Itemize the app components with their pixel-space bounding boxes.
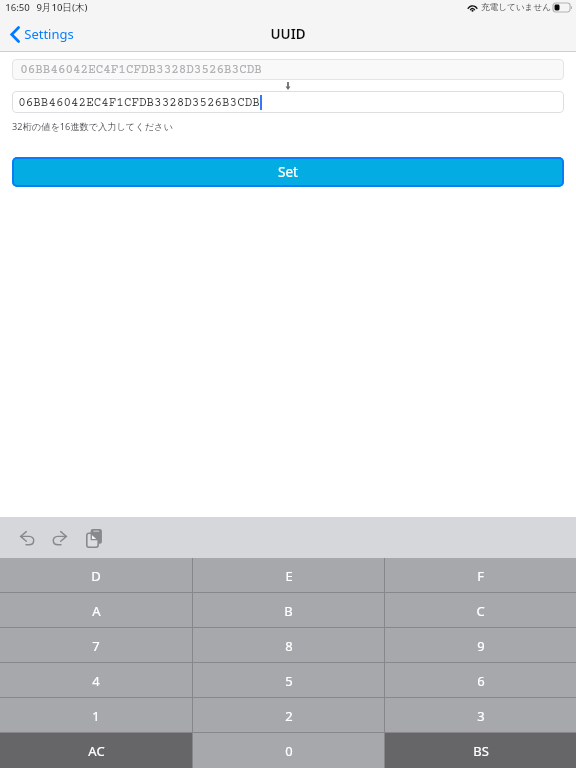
staticText: B bbox=[284, 602, 293, 620]
button[interactable]: 0 bbox=[193, 733, 384, 768]
button[interactable]: Paste bbox=[75, 522, 107, 554]
button[interactable]: D bbox=[0, 558, 192, 593]
staticText: 7 bbox=[92, 637, 100, 655]
staticText: 2 bbox=[285, 707, 293, 725]
button[interactable]: Set bbox=[12, 157, 564, 187]
button[interactable]: 5 bbox=[193, 663, 384, 698]
staticText: 06BB46042EC4F1CFDB3328D3526B3CDB bbox=[18, 96, 260, 110]
button[interactable]: AC bbox=[0, 733, 192, 768]
staticText: Settings bbox=[24, 25, 74, 43]
button[interactable]: Settings bbox=[0, 25, 82, 43]
staticText: 1 bbox=[92, 707, 100, 725]
staticText: Set bbox=[278, 163, 298, 181]
button[interactable]: E bbox=[193, 558, 384, 593]
staticText: D bbox=[91, 567, 101, 585]
staticText: 9月10日(木) bbox=[36, 1, 88, 14]
staticText: AC bbox=[88, 742, 105, 760]
staticText: A bbox=[92, 602, 101, 620]
staticText: 16:50 bbox=[5, 1, 30, 14]
staticText: UUID bbox=[270, 25, 306, 43]
button[interactable]: F bbox=[385, 558, 576, 593]
button[interactable]: 2 bbox=[193, 698, 384, 733]
staticText: 4 bbox=[92, 672, 100, 690]
button[interactable]: Redo bbox=[43, 522, 75, 554]
button[interactable]: 3 bbox=[385, 698, 576, 733]
staticText: 32桁の値を16進数で入力してください bbox=[12, 120, 173, 133]
staticText: 9 bbox=[477, 637, 485, 655]
staticText: 0 bbox=[285, 742, 293, 760]
staticText: 06BB46042EC4F1CFDB3328D3526B3CDB bbox=[20, 63, 262, 77]
staticText: 充電していません bbox=[481, 2, 551, 13]
staticText: E bbox=[285, 567, 293, 585]
button[interactable]: 8 bbox=[193, 628, 384, 663]
button[interactable]: BS bbox=[385, 733, 576, 768]
button[interactable]: Undo bbox=[11, 522, 43, 554]
button[interactable]: 4 bbox=[0, 663, 192, 698]
button[interactable]: C bbox=[385, 593, 576, 628]
staticText: 6 bbox=[477, 672, 485, 690]
staticText: 3 bbox=[477, 707, 485, 725]
staticText: 8 bbox=[285, 637, 293, 655]
staticText: C bbox=[476, 602, 485, 620]
button[interactable]: 1 bbox=[0, 698, 192, 733]
button[interactable]: B bbox=[193, 593, 384, 628]
button[interactable]: 7 bbox=[0, 628, 192, 663]
button[interactable]: 9 bbox=[385, 628, 576, 663]
staticText: BS bbox=[473, 742, 489, 760]
button[interactable]: 6 bbox=[385, 663, 576, 698]
staticText: F bbox=[477, 567, 484, 585]
staticText: 5 bbox=[285, 672, 293, 690]
button[interactable]: A bbox=[0, 593, 192, 628]
